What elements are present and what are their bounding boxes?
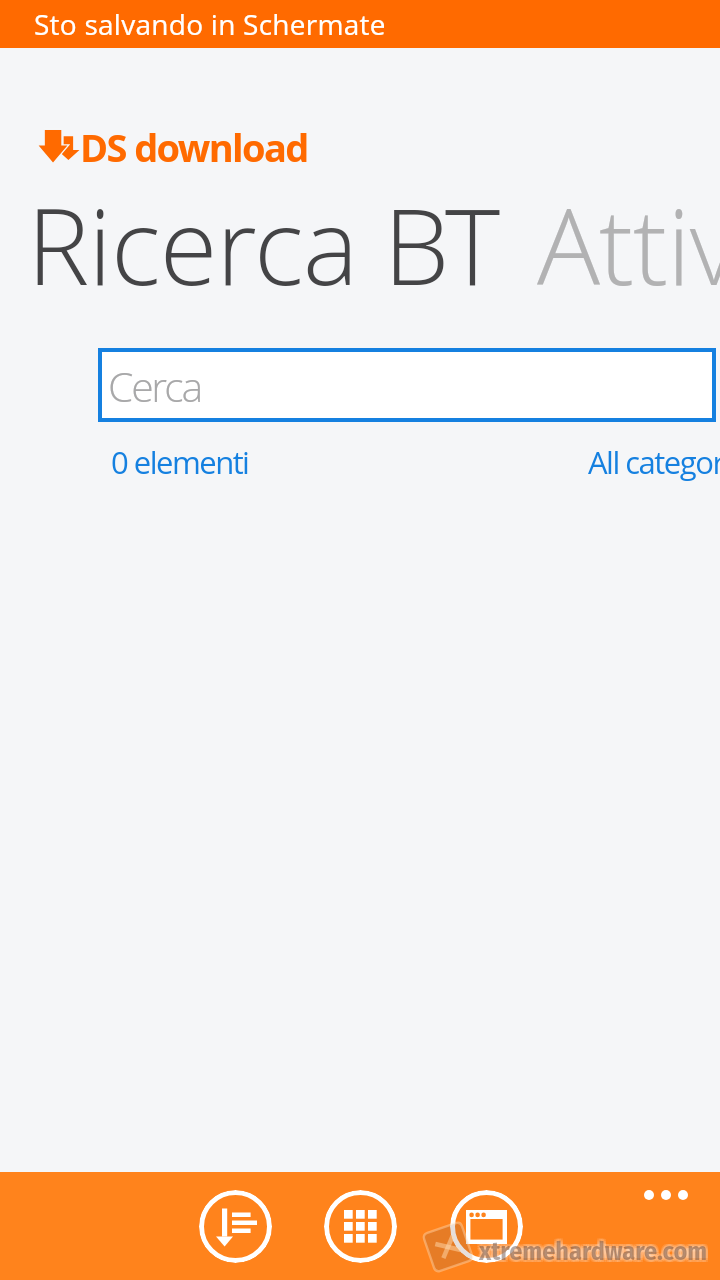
staticText: xtremehardware.com <box>479 1234 708 1265</box>
staticText: Attivi <box>537 173 720 316</box>
button[interactable]: Sort downloads <box>199 1190 272 1263</box>
staticText: xtremehardware.com <box>477 1234 706 1265</box>
button[interactable]: Cerca <box>102 352 712 418</box>
staticText: xtremehardware.com <box>479 1238 708 1269</box>
button[interactable]: More options <box>644 1190 688 1200</box>
staticText: Ricerca BT <box>27 173 499 316</box>
staticText: Sto salvando in Schermate <box>34 5 386 43</box>
staticText: xtremehardware.com <box>481 1238 710 1269</box>
staticText: xtremehardware.com <box>481 1234 710 1265</box>
staticText: xtremehardware.com <box>481 1236 710 1267</box>
staticText: xtremehardware.com <box>479 1236 708 1267</box>
button[interactable]: 0 elementi <box>111 441 249 483</box>
staticText: DS download <box>80 121 308 173</box>
staticText: Cerca <box>108 358 201 414</box>
button[interactable]: All apps <box>324 1190 397 1263</box>
staticText: xtremehardware.com <box>477 1236 706 1267</box>
button[interactable]: Browser <box>450 1190 523 1263</box>
staticText: xtremehardware.com <box>477 1238 706 1269</box>
button[interactable]: All categories <box>588 441 720 483</box>
